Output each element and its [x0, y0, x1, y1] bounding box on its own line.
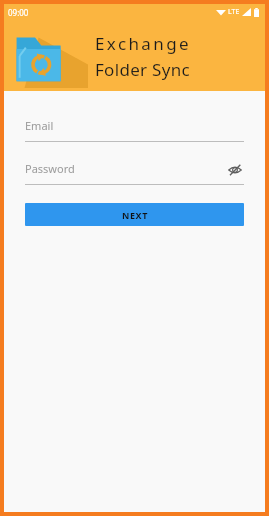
button[interactable]: Email — [25, 115, 244, 142]
button[interactable]: NEXT — [25, 203, 244, 226]
staticText: Email — [25, 118, 54, 133]
button[interactable]: Show password — [226, 161, 244, 179]
staticText: NEXT — [122, 209, 148, 221]
staticText: Exchange — [95, 32, 192, 55]
staticText: Folder Sync — [95, 58, 190, 81]
staticText: LTE — [228, 7, 240, 17]
staticText: 09:00 — [8, 7, 29, 18]
button[interactable]: Password — [25, 158, 244, 185]
staticText: Password — [25, 161, 75, 176]
